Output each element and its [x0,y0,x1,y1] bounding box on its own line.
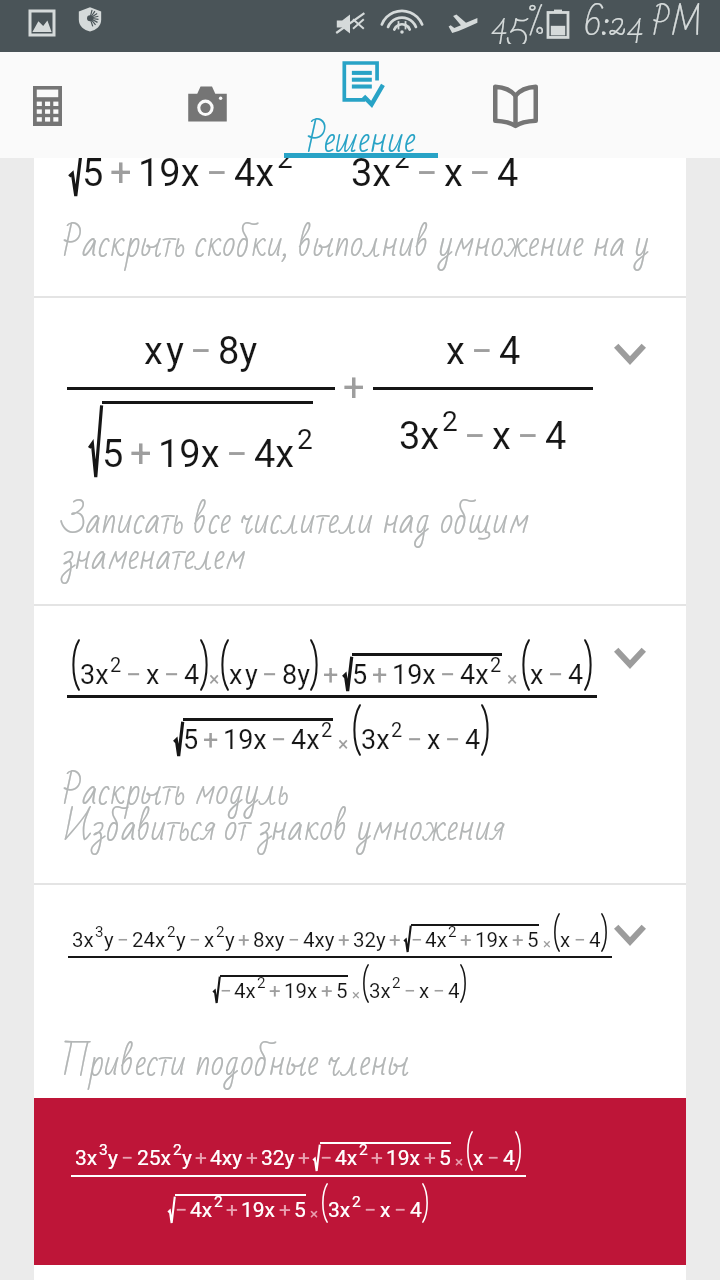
staticText: x [204,928,215,952]
staticText: 3x [361,724,390,756]
staticText: + [460,928,472,952]
staticText: × [310,1205,319,1223]
staticText: + [389,928,401,952]
staticText: 8y [218,329,258,374]
staticText: 4 [499,329,521,374]
staticText: 19x [475,928,509,952]
staticText: 8xy [253,928,285,952]
staticText: + [269,979,281,1003]
button[interactable]: Calculator [0,52,122,158]
staticText: 2 [277,158,293,175]
staticText: 3x [72,928,94,952]
staticText: 4 [465,724,481,756]
staticText: 2 [391,718,403,741]
staticText: − [469,158,491,196]
staticText: 3x [328,1198,351,1223]
staticText: 4x [190,1198,213,1223]
staticText: Раскрыть скобки, выполнив умножение на у [62,210,650,279]
staticText: − [190,329,212,374]
staticText: 4 [568,659,584,691]
button[interactable]: Решение [284,52,438,158]
button[interactable]: Expand step [615,344,645,362]
staticText: − [471,329,493,374]
staticText: 24x [132,928,166,952]
button[interactable]: Camera [130,52,284,158]
staticText: 19x [284,979,318,1003]
staticText: 5 [82,158,104,196]
staticText: 6:24 PM [584,0,703,43]
staticText: x [427,724,441,756]
staticText: 4 [497,158,519,196]
staticText: 2 [214,1193,223,1211]
staticText: − [416,158,438,196]
staticText: + [371,1146,383,1171]
button[interactable]: x [34,298,686,604]
staticText: x [444,158,463,196]
staticText: − [226,432,248,477]
staticText: 2 [257,974,266,992]
staticText: 32y [353,928,386,952]
staticText: y [176,928,186,952]
staticText: − [206,158,228,196]
staticText: − [220,979,232,1003]
staticText: 19x [241,1198,276,1223]
button[interactable]: 3x [34,1098,686,1265]
staticText: × [209,668,220,691]
staticText: − [271,724,287,756]
button[interactable]: Expand step [615,925,645,943]
button[interactable]: Book [438,52,592,158]
staticText: + [512,928,524,952]
staticText: − [288,928,300,952]
staticText: × [543,935,551,952]
staticText: − [126,659,142,691]
button[interactable]: 3x [34,885,686,1100]
staticText: 2 [167,923,176,941]
staticText: 5 [294,1198,306,1223]
staticText: 19x [138,158,200,196]
staticText: − [433,979,445,1003]
staticText: 5 [527,928,539,952]
button[interactable]: Expand step [615,648,645,666]
button[interactable]: 5 [34,158,686,296]
staticText: 3x [369,979,391,1003]
staticText: Раскрыть модуль Избавиться от знаков умн… [62,758,505,863]
staticText: × [338,733,349,756]
staticText: 4 [410,1198,422,1223]
staticText: 4x [234,158,275,196]
staticText: y [166,329,184,374]
staticText: − [574,928,586,952]
staticText: 3x [75,1146,98,1171]
button[interactable]: 3x [34,606,686,883]
staticText: 4x [254,432,295,477]
staticText: + [343,366,365,411]
staticText: y [182,1146,192,1171]
staticText: − [175,1198,188,1223]
staticText: 2 [321,718,333,741]
staticText: 4 [545,414,567,459]
staticText: + [203,724,219,756]
staticText: − [487,1146,500,1171]
staticText: − [121,1146,134,1171]
staticText: x [446,329,465,374]
staticText: 4x [234,979,256,1003]
staticText: 19x [386,1146,421,1171]
staticText: 4x [335,1146,358,1171]
staticText: + [372,659,388,691]
staticText: 4 [184,659,200,691]
staticText: 4 [448,979,460,1003]
staticText: 5 [352,659,368,691]
staticText: − [404,979,416,1003]
staticText: − [548,659,564,691]
staticText: Решение [306,104,416,158]
staticText: x [530,659,544,691]
staticText: 4 [589,928,601,952]
staticText: × [507,668,518,691]
staticText: − [164,659,180,691]
staticText: y [245,659,258,691]
staticText: + [246,1146,258,1171]
staticText: x [229,659,243,691]
staticText: x [492,414,511,459]
staticText: 2 [442,405,458,438]
staticText: + [321,979,333,1003]
staticText: 3x [399,414,440,459]
